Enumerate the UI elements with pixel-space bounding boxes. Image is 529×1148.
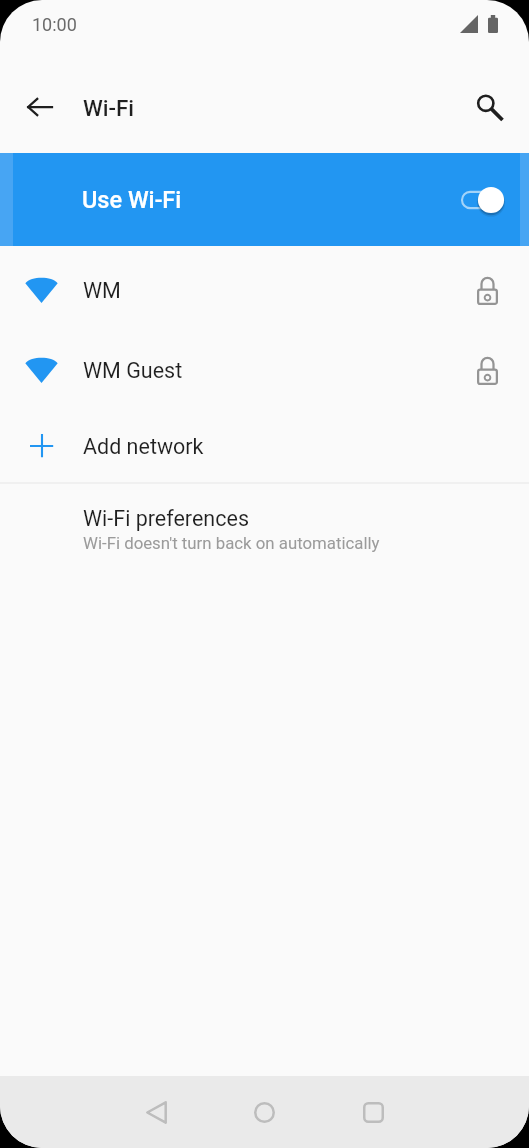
staticText: Wi-Fi: [83, 95, 135, 121]
staticText: Add network: [83, 434, 204, 459]
button[interactable]: Use Wi-Fi: [0, 153, 529, 246]
button[interactable]: WM: [0, 250, 529, 330]
staticText: WM: [83, 278, 121, 303]
button[interactable]: Back: [128, 1084, 184, 1140]
button[interactable]: Add network: [0, 410, 529, 482]
staticText: 10:00: [32, 14, 77, 35]
button[interactable]: Navigate up: [14, 82, 64, 132]
button[interactable]: Recent apps: [345, 1084, 401, 1140]
button[interactable]: Wi-Fi preferences: [0, 484, 529, 573]
button[interactable]: Search: [461, 82, 511, 132]
button[interactable]: Use Wi-Fi toggle: [455, 175, 515, 225]
button[interactable]: WM Guest: [0, 330, 529, 410]
staticText: Use Wi-Fi: [82, 186, 182, 214]
staticText: Wi-Fi doesn't turn back on automatically: [83, 533, 380, 553]
button[interactable]: Home: [236, 1084, 292, 1140]
staticText: WM Guest: [83, 358, 183, 383]
staticText: Wi-Fi preferences: [83, 506, 249, 531]
